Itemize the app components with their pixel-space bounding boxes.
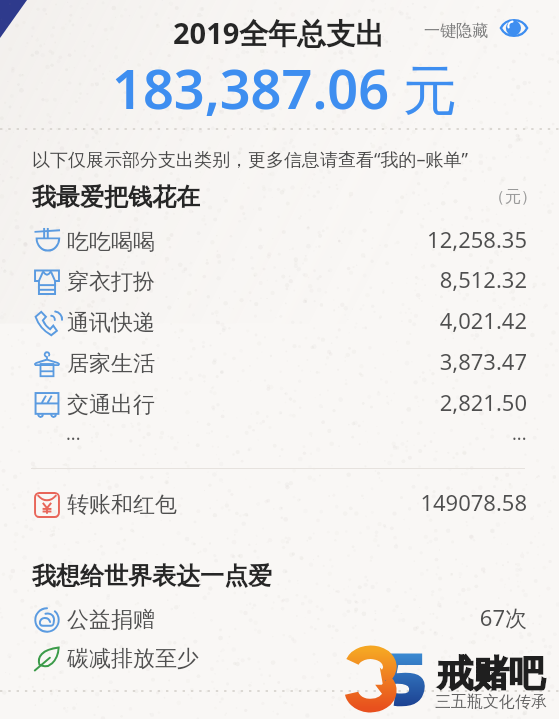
staticText: 穿衣打扮 (67, 268, 155, 296)
button[interactable]: 穿衣打扮 (0, 262, 559, 300)
staticText: 公益捐赠 (67, 606, 155, 634)
staticText: 一键隐藏 (424, 21, 488, 41)
staticText: 戒赌吧 (437, 651, 545, 696)
staticText: ... (512, 421, 527, 446)
button[interactable]: 通讯快递 (0, 303, 559, 341)
staticText: 我最爱把钱花在 (32, 182, 200, 212)
staticText: 4,021.42 (0, 305, 527, 335)
button[interactable]: 转账和红包 (0, 485, 559, 523)
staticText: 吃吃喝喝 (67, 228, 155, 256)
staticText: 通讯快递 (67, 309, 155, 337)
staticText: 12,258.35 (0, 224, 527, 254)
staticText: 8,512.32 (0, 264, 527, 294)
other: Hide amounts (500, 17, 528, 39)
button[interactable]: 公益捐赠 (0, 600, 559, 638)
staticText: 居家生活 (67, 350, 155, 378)
staticText: 2,821.50 (0, 387, 527, 417)
staticText: （元） (489, 187, 537, 207)
staticText: 三五瓶文化传承 (435, 692, 547, 712)
staticText: 交通出行 (67, 391, 155, 419)
staticText: 149078.58 (0, 487, 527, 517)
button[interactable]: 居家生活 (0, 344, 559, 382)
staticText: 67次 (0, 602, 527, 632)
button[interactable]: 碳减排放至少 (0, 639, 559, 677)
staticText: 转账和红包 (67, 491, 177, 519)
staticText: ... (66, 421, 81, 446)
staticText: 碳减排放至少 (67, 645, 199, 673)
button[interactable]: 吃吃喝喝 (0, 222, 559, 260)
staticText: 183,387.06 元 (112, 51, 458, 125)
staticText: 2019全年总支出 (173, 13, 385, 53)
button[interactable]: 一键隐藏 (418, 11, 536, 45)
button[interactable]: 交通出行 (0, 385, 559, 423)
staticText: 我想给世界表达一点爱 (32, 561, 272, 591)
staticText: 以下仅展示部分支出类别，更多信息请查看“我的–账单” (32, 147, 468, 172)
staticText: 3,873.47 (0, 346, 527, 376)
